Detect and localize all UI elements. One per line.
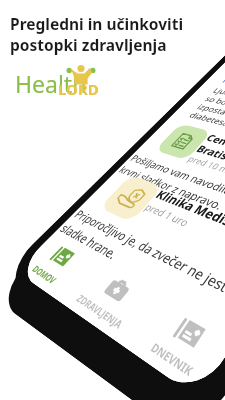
staticText: NASVET DNEVA [220,77,225,94]
button[interactable]: DOMOV [22,235,90,293]
staticText: LORD [58,79,99,99]
staticText: Center za zdravje Bratislava [194,132,225,182]
staticText: Pregledni in učinkoviti [10,13,184,34]
staticText: Pošiljamo vam navodila kako meriti krvni… [116,152,225,241]
staticText: postopki zdravljenja [10,34,167,55]
button[interactable]: Center za zdravje Bratislava [112,118,225,245]
staticText: Klinika Medissimo [152,187,225,243]
button[interactable]: DNEVNIK [138,300,225,390]
staticText: DOMOV [30,263,60,286]
staticText: Priporočljivo je, da zvečer ne jeste sla… [57,207,225,333]
button[interactable]: Klinika Medissimo [52,167,225,339]
staticText: ZDRAVLJENJA [74,291,127,332]
staticText: pred 10 min [185,153,225,178]
staticText: pred 1 uro [142,200,192,230]
staticText: Ljudje z visokim krvnim tlakom so bolj i… [187,86,225,154]
button[interactable]: ZDRAVLJENJA [65,260,159,340]
staticText: DNEVNIK [148,339,197,380]
staticText: Health [15,68,87,99]
